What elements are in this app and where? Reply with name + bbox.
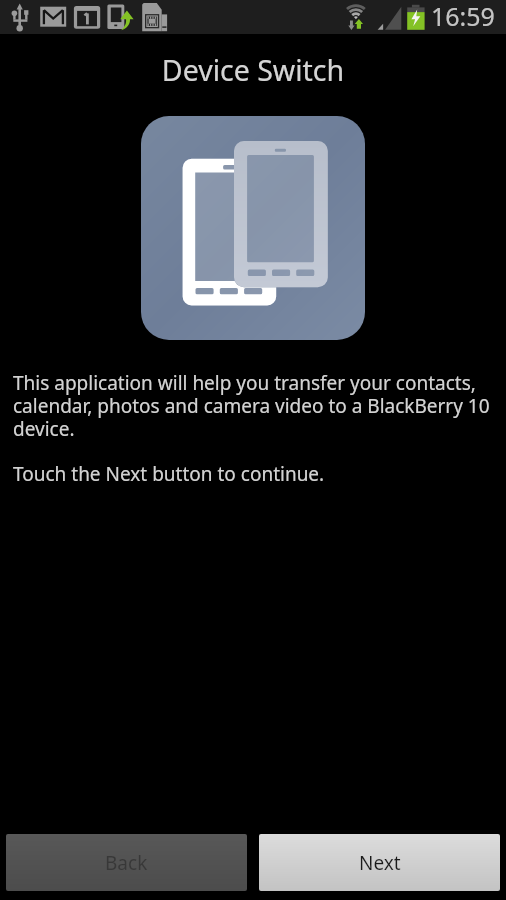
- staticText: Touch the Next button to continue.: [13, 461, 498, 487]
- button[interactable]: Next: [259, 834, 500, 891]
- staticText: This application will help you transfer …: [13, 370, 498, 442]
- staticText: Back: [105, 850, 148, 876]
- staticText: Device Switch: [0, 51, 506, 90]
- button[interactable]: Back: [6, 834, 247, 891]
- staticText: 16:59: [431, 0, 495, 33]
- staticText: Next: [359, 850, 401, 876]
